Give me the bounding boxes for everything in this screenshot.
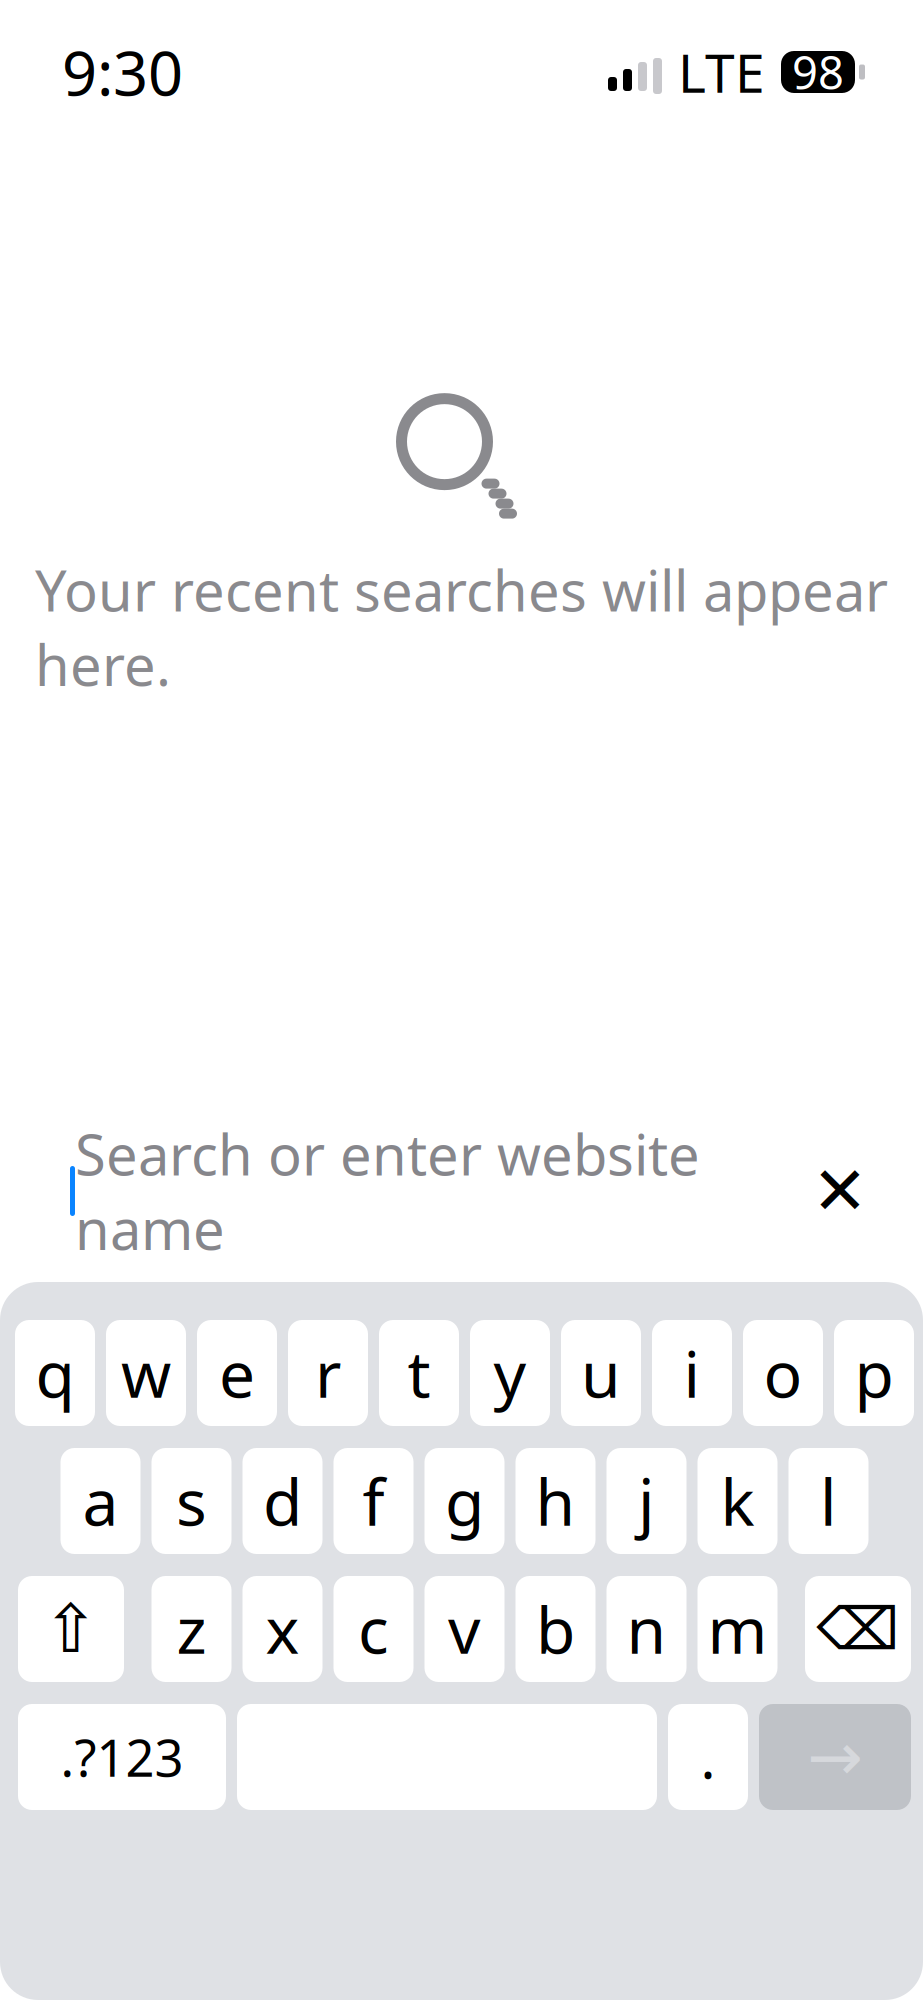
staticText: i [683, 1330, 700, 1415]
button[interactable]: j [606, 1448, 686, 1554]
staticText: y [493, 1330, 526, 1415]
button[interactable]: n [606, 1576, 686, 1682]
staticText: 98 [792, 42, 844, 102]
button[interactable]: .?123 [18, 1704, 226, 1810]
button[interactable]: m [697, 1576, 777, 1682]
button[interactable]: k [697, 1448, 777, 1554]
button[interactable]: u [561, 1320, 641, 1426]
button[interactable]: l [788, 1448, 868, 1554]
button[interactable]: g [424, 1448, 504, 1554]
button[interactable]: d [242, 1448, 322, 1554]
staticText: LTE [678, 37, 765, 107]
staticText: a [82, 1458, 118, 1543]
staticText: f [362, 1458, 384, 1543]
button[interactable]: z [151, 1576, 231, 1682]
staticText: j [638, 1458, 655, 1543]
staticText: g [445, 1458, 484, 1543]
staticText: ⌫ [816, 1596, 899, 1662]
staticText: 9:30 [62, 31, 183, 113]
button[interactable]: f [333, 1448, 413, 1554]
staticText: → [807, 1719, 863, 1795]
staticText: p [854, 1330, 893, 1415]
button[interactable]: x [242, 1576, 322, 1682]
button[interactable]: Delete [805, 1576, 911, 1682]
staticText: . [700, 1720, 715, 1794]
staticText: k [720, 1458, 754, 1543]
button[interactable]: . [668, 1704, 748, 1810]
button[interactable]: go [759, 1704, 911, 1810]
button[interactable]: c [333, 1576, 413, 1682]
button[interactable]: i [652, 1320, 732, 1426]
button[interactable]: v [424, 1576, 504, 1682]
staticText: u [581, 1330, 621, 1415]
staticText: t [407, 1330, 430, 1415]
staticText: v [448, 1586, 481, 1671]
staticText: s [176, 1458, 207, 1543]
staticText: Your recent searches will appear here. [35, 553, 888, 701]
staticText: ⇧ [43, 1591, 99, 1667]
button[interactable]: Shift [18, 1576, 124, 1682]
staticText: n [626, 1586, 666, 1671]
staticText: q [35, 1330, 74, 1415]
staticText: z [176, 1586, 206, 1671]
staticText: Search or enter website name [75, 1117, 700, 1265]
staticText: ✕ [812, 1153, 868, 1229]
button[interactable]: e [197, 1320, 277, 1426]
button[interactable]: t [379, 1320, 459, 1426]
button[interactable]: w [106, 1320, 186, 1426]
staticText: o [763, 1330, 802, 1415]
button[interactable]: Search or enter website name [28, 1138, 767, 1244]
button[interactable]: q [15, 1320, 95, 1426]
button[interactable]: s [151, 1448, 231, 1554]
staticText: e [219, 1330, 255, 1415]
staticText: b [536, 1586, 575, 1671]
staticText: c [358, 1586, 389, 1671]
button[interactable]: y [470, 1320, 550, 1426]
button[interactable]: r [288, 1320, 368, 1426]
staticText: m [707, 1586, 767, 1671]
staticText: d [263, 1458, 302, 1543]
staticText: r [315, 1330, 341, 1415]
button[interactable]: h [515, 1448, 595, 1554]
staticText: l [820, 1458, 837, 1543]
staticText: .?123 [60, 1723, 183, 1791]
staticText: x [265, 1586, 299, 1671]
staticText: w [121, 1330, 171, 1415]
button[interactable]: p [834, 1320, 914, 1426]
button[interactable]: Close search [787, 1138, 893, 1244]
button[interactable]: o [743, 1320, 823, 1426]
staticText: h [535, 1458, 575, 1543]
button[interactable]: a [60, 1448, 140, 1554]
button[interactable]: b [515, 1576, 595, 1682]
